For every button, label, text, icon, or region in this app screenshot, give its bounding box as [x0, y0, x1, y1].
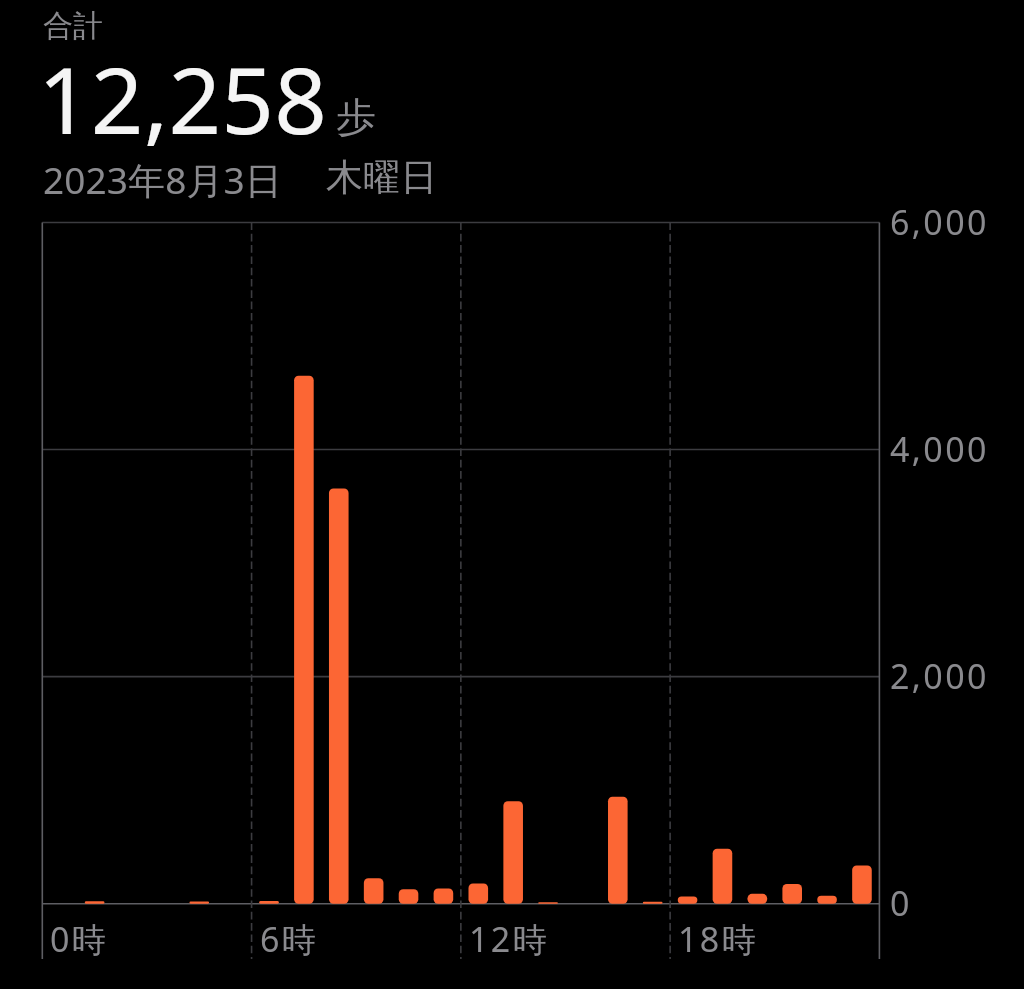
staticText: 0時 [50, 916, 109, 962]
staticText: 4,000 [890, 426, 989, 472]
staticText: 0 [890, 880, 912, 926]
staticText: 歩 [336, 92, 376, 142]
staticText: 18時 [678, 916, 759, 962]
button[interactable]: 1時間ごとの歩数グラフ [42, 219, 879, 908]
staticText: 合計 [43, 7, 103, 45]
button[interactable]: 合計 [0, 0, 1024, 205]
staticText: 2,000 [890, 653, 989, 699]
staticText: 6,000 [890, 199, 989, 245]
staticText: 木曜日 [326, 154, 438, 201]
staticText: 2023年8月3日 [43, 154, 282, 205]
staticText: 12時 [469, 916, 550, 962]
staticText: 12,258 [38, 36, 327, 161]
staticText: 6時 [260, 916, 319, 962]
